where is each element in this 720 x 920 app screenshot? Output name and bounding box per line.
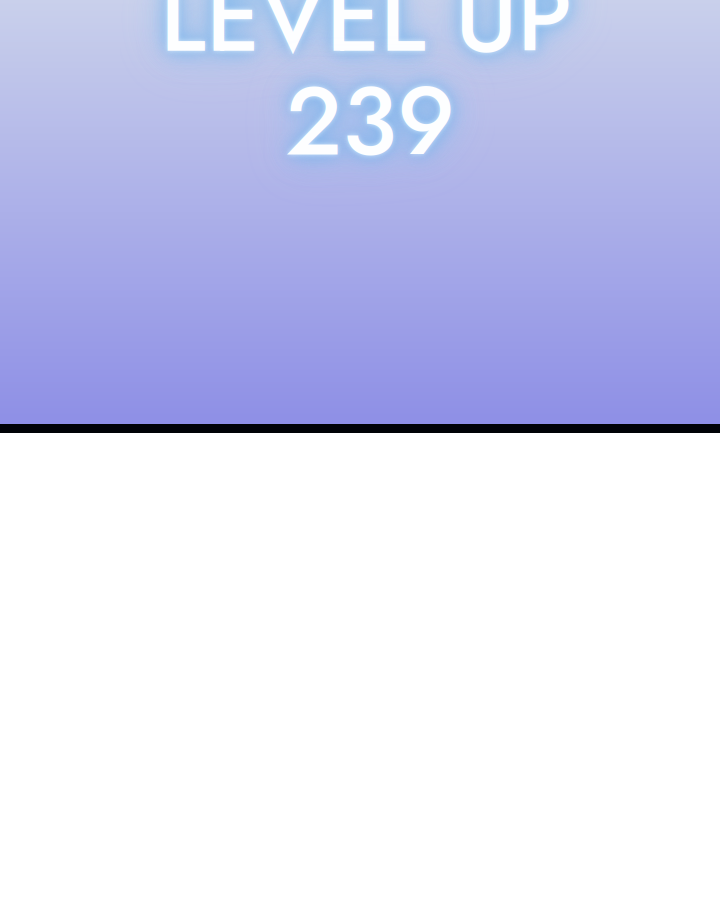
- staticText: 239: [285, 52, 455, 190]
- staticText: LEVEL UP: [160, 0, 572, 87]
